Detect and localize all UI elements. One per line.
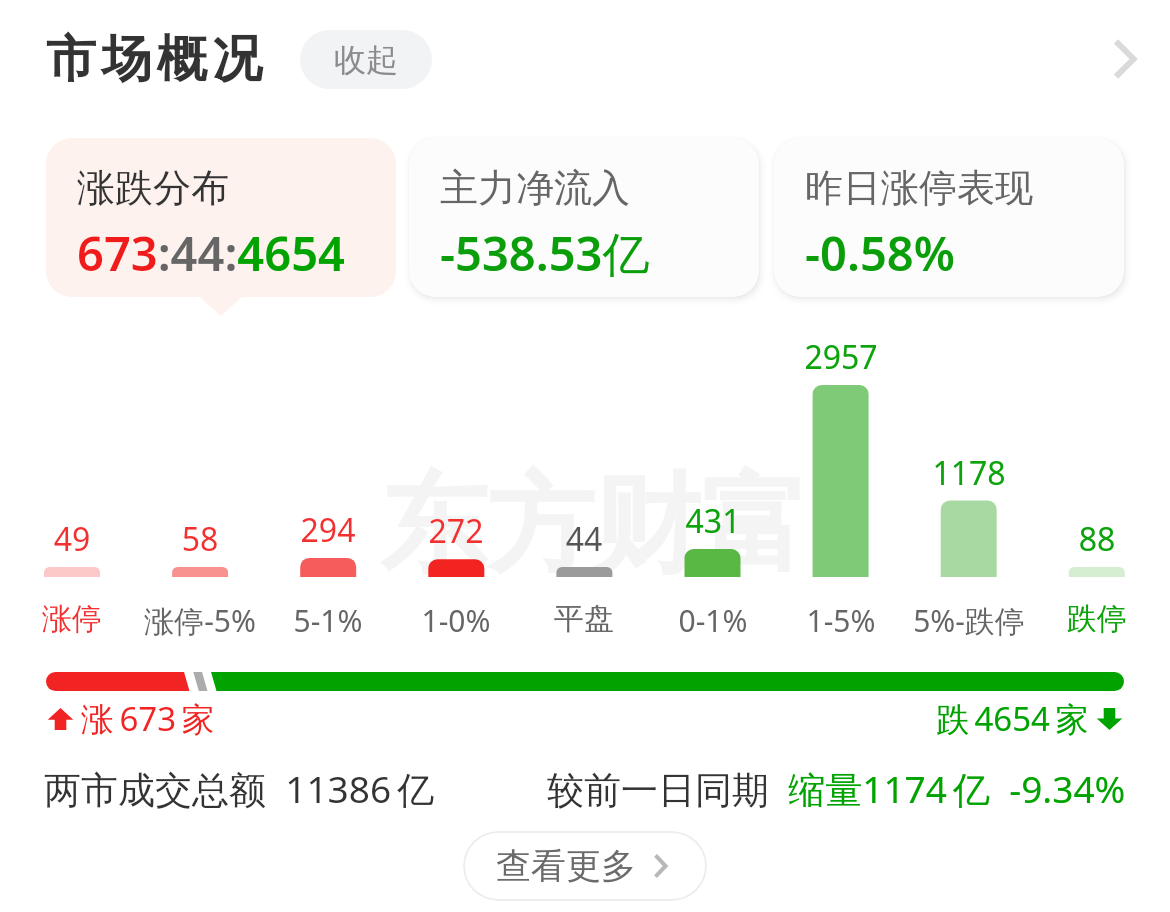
button[interactable]: 查看更多 <box>463 831 707 901</box>
button[interactable]: 主力净流入 <box>409 138 759 297</box>
staticText: 294 <box>268 508 388 552</box>
staticText: 0-1% <box>643 600 783 641</box>
staticText: 平盘 <box>514 600 654 638</box>
button[interactable]: 涨跌分布 <box>46 138 396 297</box>
staticText: 5-1% <box>258 600 398 641</box>
staticText: 58 <box>140 517 260 561</box>
staticText: 主力净流入 <box>440 164 630 212</box>
staticText: 东方财富 <box>380 458 808 593</box>
button[interactable]: 收起 <box>300 30 432 89</box>
staticText: 5%-跌停 <box>899 600 1039 641</box>
staticText: 44 <box>524 517 644 561</box>
staticText: 收起 <box>334 40 398 80</box>
staticText: 跌 4654 家 <box>936 696 1089 741</box>
staticText: -0.58% <box>805 221 955 285</box>
staticText: 两市成交总额 11386 亿 <box>44 763 435 814</box>
button[interactable]: 昨日涨停表现 <box>774 138 1124 297</box>
staticText: 市场概况 <box>46 28 268 91</box>
staticText: 涨 673 家 <box>81 696 215 741</box>
staticText: 272 <box>396 509 516 553</box>
staticText: 昨日涨停表现 <box>805 164 1033 212</box>
staticText: 查看更多 <box>496 844 636 888</box>
staticText: 1-5% <box>771 600 911 641</box>
staticText: 1178 <box>909 451 1029 495</box>
staticText: 涨跌分布 <box>77 164 229 212</box>
staticText: 涨停 <box>2 600 142 638</box>
staticText: 673:44:4654 <box>77 221 345 285</box>
staticText: 较前一日同期 缩量1174 亿 -9.34% <box>547 763 1126 814</box>
staticText: 2957 <box>781 335 901 379</box>
staticText: 88 <box>1037 517 1157 561</box>
staticText: 49 <box>12 517 132 561</box>
staticText: 431 <box>653 499 773 543</box>
staticText: -538.53亿 <box>440 221 650 285</box>
staticText: 涨停-5% <box>130 600 270 641</box>
staticText: 1-0% <box>386 600 526 641</box>
staticText: 跌停 <box>1027 600 1167 638</box>
button[interactable]: 展开更多 <box>1085 21 1161 97</box>
